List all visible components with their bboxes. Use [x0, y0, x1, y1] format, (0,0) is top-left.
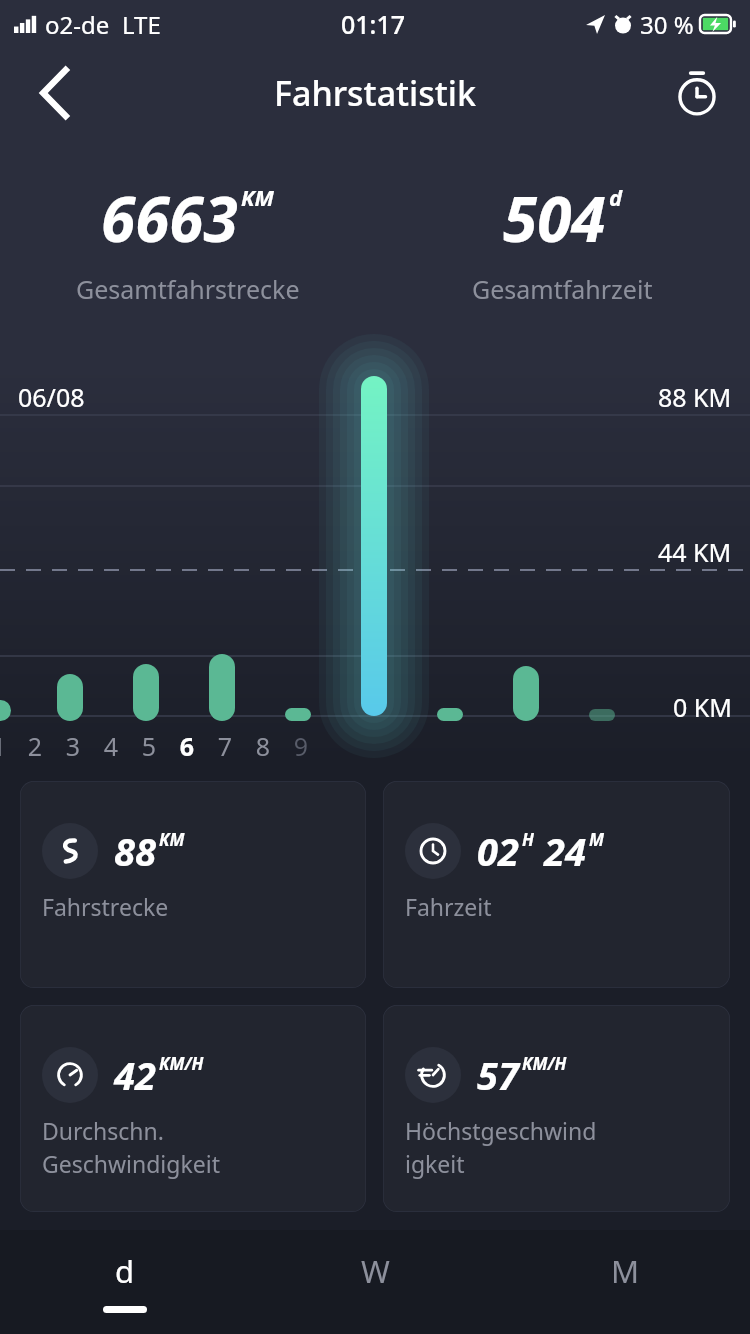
staticText: M	[611, 1250, 640, 1292]
staticText: d	[115, 1250, 135, 1292]
button[interactable]: Stopwatch	[664, 60, 730, 126]
staticText: 1	[0, 729, 19, 763]
staticText: 4	[91, 729, 131, 763]
staticText: 57	[477, 1049, 519, 1101]
staticText: o2-de	[45, 8, 110, 41]
staticText: 02	[477, 825, 519, 877]
button[interactable]: Ride time	[383, 781, 730, 988]
staticText: Fahrstatistik	[274, 70, 477, 116]
staticText: 504	[503, 176, 606, 260]
button[interactable]: W	[250, 1230, 500, 1334]
staticText: 42	[114, 1049, 156, 1101]
staticText: 01:17	[341, 7, 406, 41]
staticText: LTE	[122, 8, 161, 41]
staticText: 6663	[101, 176, 238, 260]
button[interactable]: Back	[20, 58, 90, 128]
other: Average speed	[42, 1047, 98, 1103]
staticText: 0 KM	[673, 690, 732, 724]
staticText: 2	[15, 729, 55, 763]
staticText: 44 KM	[658, 535, 732, 569]
button[interactable]: d	[0, 1230, 250, 1334]
staticText: 8	[243, 729, 283, 763]
staticText: H	[522, 828, 534, 851]
staticText: 88	[114, 825, 156, 877]
staticText: Gesamtfahrzeit	[472, 272, 653, 306]
button[interactable]: Average speed	[20, 1005, 366, 1212]
staticText: Fahrzeit	[405, 891, 492, 922]
staticText: Höchstgeschwind igkeit	[405, 1115, 597, 1180]
button[interactable]: Distance	[20, 781, 366, 988]
other: Top speed	[405, 1047, 461, 1103]
staticText: 9	[281, 729, 321, 763]
staticText: 3	[53, 729, 93, 763]
staticText: 30 %	[640, 8, 694, 41]
button[interactable]: Top speed	[383, 1005, 730, 1212]
staticText: d	[609, 182, 623, 212]
staticText: KM	[159, 828, 185, 851]
other: Distance	[42, 823, 98, 879]
staticText: 7	[205, 729, 245, 763]
staticText: Gesamtfahrstrecke	[76, 272, 300, 306]
staticText: 88 KM	[658, 380, 732, 414]
staticText: 06/08	[18, 380, 85, 414]
staticText: 5	[129, 729, 169, 763]
staticText: KM/H	[159, 1052, 204, 1075]
staticText: 6	[167, 729, 207, 763]
staticText: Fahrstrecke	[42, 891, 169, 922]
staticText: M	[589, 828, 604, 851]
staticText: Durchschn. Geschwindigkeit	[42, 1115, 220, 1180]
other: Ride time	[405, 823, 461, 879]
button[interactable]: M	[500, 1230, 750, 1334]
staticText: KM	[241, 182, 274, 212]
staticText: 24	[544, 825, 586, 877]
staticText: KM/H	[522, 1052, 567, 1075]
staticText: W	[361, 1250, 390, 1292]
